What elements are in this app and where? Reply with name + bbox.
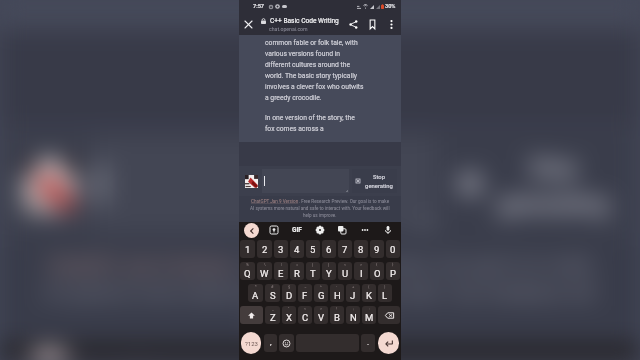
button[interactable]: < <box>298 306 312 324</box>
staticText: K <box>366 290 372 301</box>
button[interactable]: Emoji <box>279 334 294 352</box>
button[interactable]: 6 <box>322 240 336 258</box>
button[interactable]: } <box>386 262 400 280</box>
button[interactable]: Settings <box>312 222 328 238</box>
staticText: ] <box>328 262 330 267</box>
button[interactable]: GIF <box>197 346 261 360</box>
staticText: { <box>376 262 378 267</box>
button[interactable]: { <box>370 262 384 280</box>
staticText: 2 <box>262 244 268 255</box>
button[interactable]: ^ <box>314 284 328 302</box>
staticText: Z <box>270 312 276 323</box>
staticText: % <box>246 262 249 267</box>
button[interactable]: Translate <box>334 222 350 238</box>
staticText: 0 <box>390 244 396 255</box>
button[interactable]: % <box>240 262 255 280</box>
button[interactable]: 1 <box>240 240 255 258</box>
staticText: + <box>352 284 355 289</box>
staticText: various versions found in <box>265 50 340 58</box>
button[interactable]: , <box>264 334 277 352</box>
button[interactable]: Backspace <box>378 306 400 324</box>
button[interactable]: " <box>282 306 296 324</box>
button[interactable]: < <box>338 262 352 280</box>
button[interactable]: Stop generating <box>446 136 624 231</box>
staticText: G <box>318 290 325 301</box>
button[interactable]: > <box>354 262 368 280</box>
button[interactable]: Close <box>239 13 258 35</box>
button[interactable]: ) <box>378 284 392 302</box>
button[interactable]: [ <box>306 262 320 280</box>
button[interactable]: Bookmark <box>363 15 382 34</box>
button[interactable]: ] <box>322 262 336 280</box>
button[interactable]: Voice input <box>380 222 396 238</box>
staticText: ?123 <box>245 340 258 347</box>
staticText: world. The basic story typically <box>265 72 357 80</box>
button[interactable]: # <box>265 284 280 302</box>
staticText: < <box>304 306 307 311</box>
staticText: : <box>369 306 370 311</box>
button[interactable] <box>91 136 434 231</box>
staticText: . <box>367 338 370 347</box>
button[interactable]: 0 <box>386 240 400 258</box>
staticText: C++ Basic Code Writing <box>270 17 339 25</box>
staticText: 6 <box>326 244 332 255</box>
staticText: Q <box>244 268 251 279</box>
button[interactable]: 2 <box>257 240 272 258</box>
button[interactable] <box>262 169 349 193</box>
staticText: * <box>255 284 257 289</box>
button[interactable]: . <box>361 334 375 352</box>
button[interactable]: > <box>314 306 328 324</box>
button[interactable]: Stickers <box>266 222 282 238</box>
staticText: 7:57 <box>253 3 265 10</box>
button[interactable]: More options <box>382 15 401 34</box>
button[interactable]: Shift <box>240 306 263 324</box>
button[interactable]: | <box>274 262 288 280</box>
staticText: O <box>374 268 381 279</box>
button[interactable]: Enter <box>378 332 399 354</box>
staticText: < <box>344 262 347 267</box>
button[interactable]: GIF <box>289 222 305 238</box>
button[interactable]: Translate <box>375 346 438 360</box>
staticText: _ <box>272 306 274 311</box>
button[interactable]: ; <box>346 306 360 324</box>
staticText: . Free Research Preview. Our goal is to … <box>237 255 596 275</box>
button[interactable]: ?123 <box>241 332 261 354</box>
button[interactable]: Back <box>244 223 259 238</box>
button[interactable]: Stop generating <box>352 169 397 193</box>
button[interactable]: Share <box>344 15 363 34</box>
button[interactable]: + <box>346 284 360 302</box>
button[interactable]: 4 <box>290 240 304 258</box>
button[interactable]: 3 <box>274 240 288 258</box>
staticText: P <box>390 268 396 279</box>
button[interactable]: = <box>290 262 304 280</box>
staticText: different cultures around the <box>265 61 351 69</box>
staticText: S <box>270 290 276 301</box>
button[interactable]: _ <box>265 306 280 324</box>
button[interactable]: Settings <box>288 346 352 360</box>
button[interactable]: 9 <box>370 240 384 258</box>
button[interactable]: 7 <box>338 240 352 258</box>
button[interactable]: 8 <box>354 240 368 258</box>
button[interactable]: More <box>357 222 373 238</box>
staticText: Stop generating <box>498 156 608 216</box>
button[interactable]: ( <box>362 284 376 302</box>
button[interactable]: - <box>330 284 344 302</box>
button[interactable]: ~ <box>298 284 312 302</box>
button[interactable]: : <box>362 306 376 324</box>
staticText: M <box>365 312 374 323</box>
button[interactable]: 5 <box>306 240 320 258</box>
staticText: T <box>310 268 316 279</box>
staticText: AI systems more natural and safe to inte… <box>250 206 390 211</box>
button[interactable]: $ <box>282 284 296 302</box>
button[interactable]: ! <box>330 306 344 324</box>
staticText: 7 <box>342 244 348 255</box>
button[interactable]: Back <box>20 350 79 360</box>
staticText: help us improve. <box>253 310 387 330</box>
button[interactable]: * <box>248 284 263 302</box>
button[interactable]: \ <box>257 262 272 280</box>
staticText: AI systems more natural and safe to inte… <box>43 283 596 302</box>
